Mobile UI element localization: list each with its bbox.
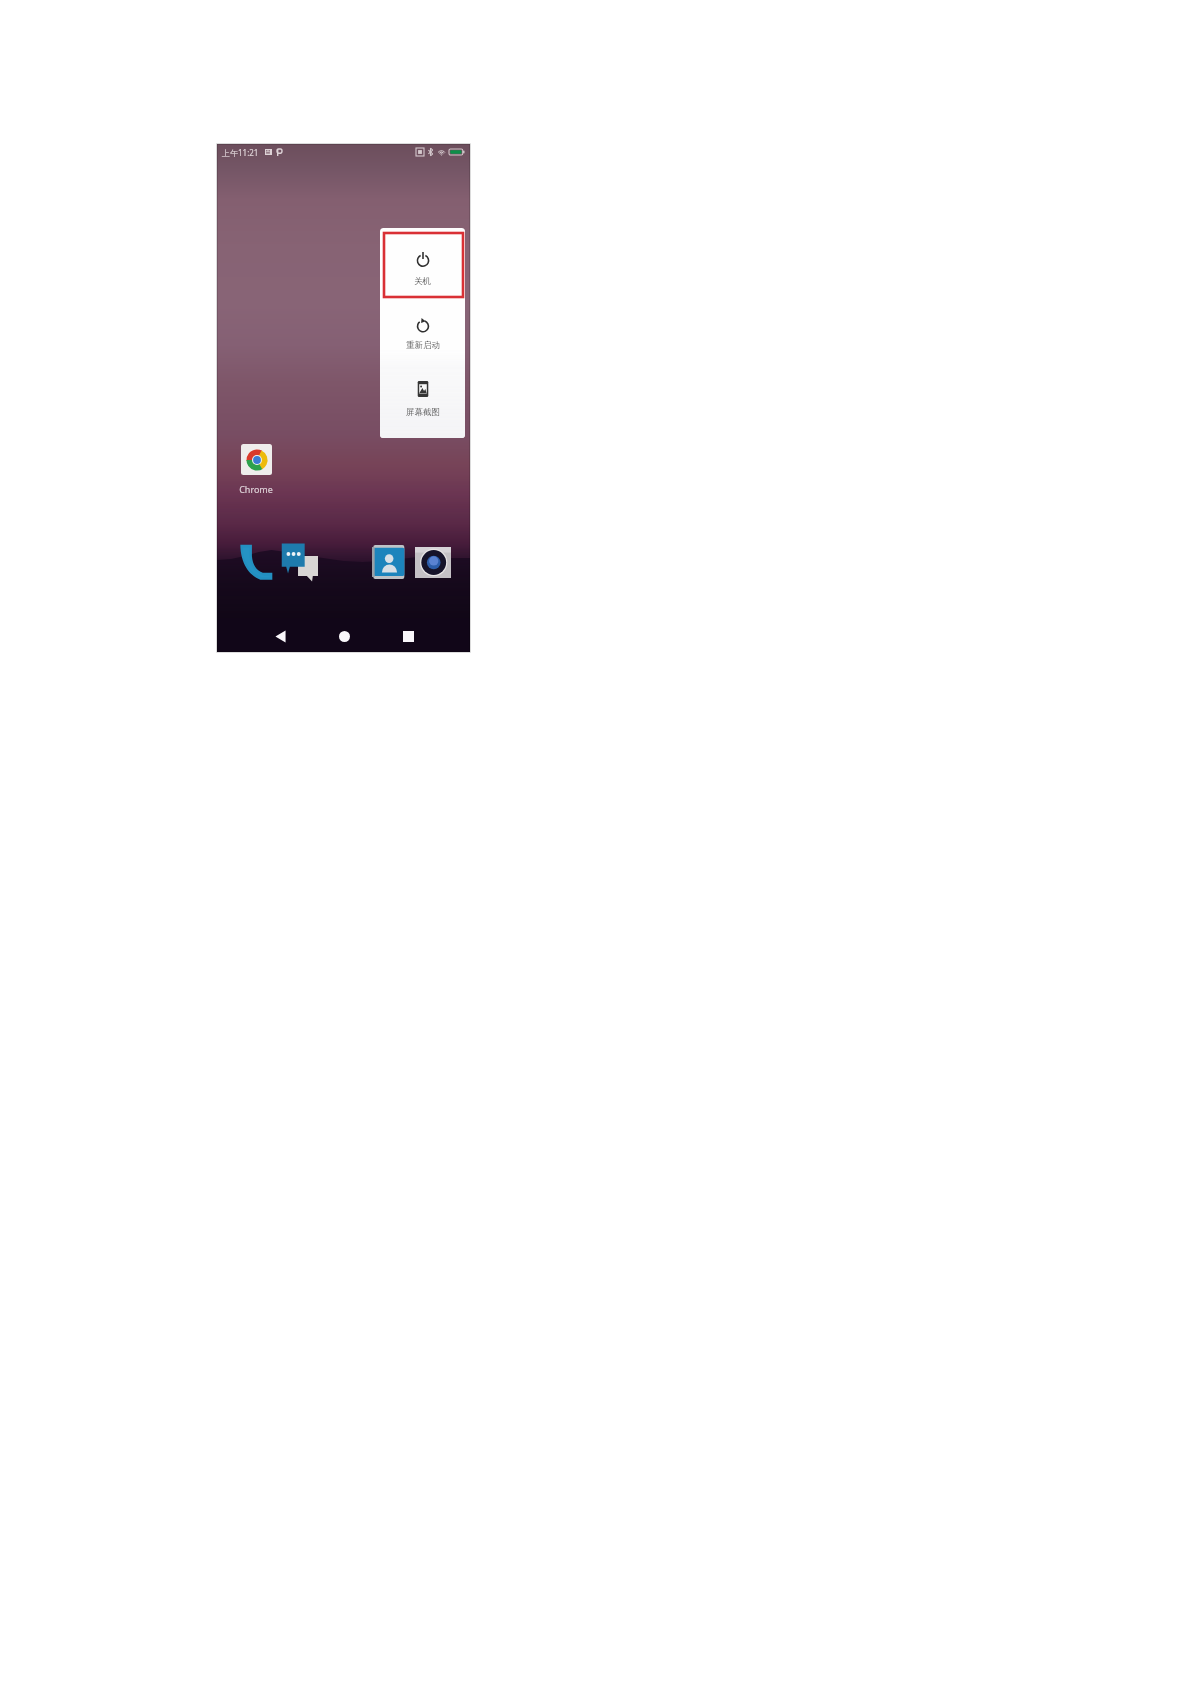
button[interactable]: Recents [392, 620, 424, 652]
staticText: 屏幕截图 [406, 407, 440, 418]
button[interactable]: Contacts [372, 545, 405, 579]
button[interactable]: Home [328, 620, 360, 652]
button[interactable]: Back [264, 620, 296, 652]
button[interactable]: 屏幕截图 [380, 364, 465, 438]
staticText: 上午11:21 [222, 147, 259, 158]
button[interactable]: Chrome [233, 444, 279, 495]
staticText: Chrome [239, 483, 273, 495]
button[interactable]: Phone [239, 544, 273, 580]
staticText: 重新启动 [406, 340, 440, 351]
button[interactable]: Camera [415, 547, 451, 578]
staticText: 关机 [414, 276, 431, 287]
button[interactable]: 关机 [380, 228, 465, 298]
button[interactable]: 重新启动 [380, 298, 465, 364]
button[interactable]: Messages [281, 542, 318, 582]
